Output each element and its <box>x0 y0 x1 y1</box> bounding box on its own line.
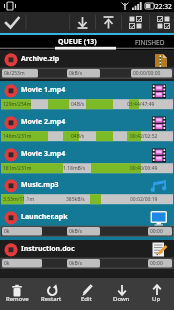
staticText: 00:42/02:52 <box>130 133 158 140</box>
staticText: 146m/231m <box>3 133 32 140</box>
button[interactable]: Archive.zip <box>0 50 174 82</box>
staticText: Instruction.doc <box>21 244 75 254</box>
button[interactable] <box>150 12 174 33</box>
button[interactable]: Music.mp3 <box>0 176 174 208</box>
button[interactable]: Movie 2.mp4 <box>0 113 174 145</box>
staticText: Up <box>152 295 161 303</box>
staticText: 1.18mB/s <box>63 165 86 172</box>
staticText: 04B/s <box>71 101 85 108</box>
staticText: Edit <box>81 295 92 303</box>
staticText: 0k/253m <box>4 70 25 77</box>
staticText: Restart <box>41 295 62 303</box>
staticText: Movie 3.mp4 <box>21 149 66 159</box>
staticText: 0kB/s <box>69 70 83 77</box>
button[interactable] <box>70 12 95 33</box>
staticText: 04B/s <box>71 133 85 140</box>
staticText: 00:02/00:19 <box>130 196 158 203</box>
staticText: 0kB/s <box>69 228 83 235</box>
button[interactable]: Edit <box>69 278 104 310</box>
staticText: Music.mp3 <box>21 180 59 190</box>
button[interactable] <box>0 12 26 33</box>
button[interactable]: Instruction.doc <box>0 240 174 272</box>
button[interactable]: Launcher.apk <box>0 208 174 240</box>
staticText: 00:40/00:49 <box>130 165 158 172</box>
staticText: Movie 2.mp4 <box>21 117 66 127</box>
staticText: 22:32 <box>155 2 172 11</box>
button[interactable]: QUEUE (13) <box>58 37 97 47</box>
staticText: 385kB/s <box>66 196 85 203</box>
staticText: Down <box>113 295 130 303</box>
staticText: 3.53m/11.1m <box>3 196 35 203</box>
staticText: Archive.zip <box>21 54 60 64</box>
button[interactable] <box>122 12 149 33</box>
staticText: 0k <box>4 228 10 235</box>
button[interactable]: Movie 3.mp4 <box>0 145 174 177</box>
button[interactable] <box>96 12 121 33</box>
button[interactable]: FINISHED <box>135 38 165 47</box>
button[interactable]: Up <box>139 278 174 310</box>
button[interactable]: Movie 1.mp4 <box>0 81 174 113</box>
staticText: 129m/254m <box>3 101 32 108</box>
staticText: 00:00/00:00 <box>133 70 161 77</box>
staticText: 0k <box>4 260 10 267</box>
staticText: 00:00 <box>150 260 163 267</box>
staticText: 00:00 <box>150 228 163 235</box>
button[interactable]: Restart <box>34 278 69 310</box>
staticText: 0kB/s <box>69 260 83 267</box>
button[interactable]: Down <box>104 278 139 310</box>
staticText: 181m/231m <box>3 165 32 172</box>
button[interactable]: Remove <box>0 278 34 310</box>
staticText: Movie 1.mp4 <box>21 85 66 95</box>
staticText: Remove <box>6 295 29 303</box>
staticText: 03:44/47:49 <box>127 101 155 108</box>
staticText: Launcher.apk <box>21 212 68 222</box>
